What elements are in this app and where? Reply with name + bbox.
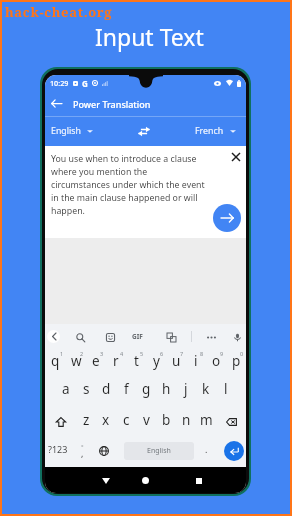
staticText: 8 (200, 350, 204, 357)
staticText: o (212, 352, 221, 370)
button[interactable]: ?123 (45, 436, 71, 465)
button[interactable]: b (156, 407, 176, 436)
staticText: g (142, 380, 151, 398)
staticText: 0 (240, 350, 244, 357)
staticText: You use when to introduce a clause where… (51, 153, 205, 217)
staticText: l (224, 380, 228, 398)
button[interactable]: Voice input (229, 329, 245, 345)
staticText: w (71, 352, 82, 370)
button[interactable]: Enter (224, 441, 244, 461)
button[interactable]: Backspace (216, 407, 246, 436)
staticText: x (102, 411, 110, 429)
button[interactable]: Recent apps (190, 472, 207, 489)
button[interactable]: h (156, 378, 176, 407)
staticText: 7 (180, 350, 184, 357)
staticText: Power Translation (73, 98, 151, 110)
button[interactable]: v (136, 407, 156, 436)
staticText: 3 (100, 350, 104, 357)
staticText: GIF (132, 332, 143, 341)
button[interactable]: Search (72, 329, 88, 345)
button[interactable]: More options (203, 329, 219, 345)
button[interactable]: 1 (45, 349, 66, 378)
button[interactable]: c (116, 407, 136, 436)
staticText: 6 (160, 350, 164, 357)
button[interactable]: j (176, 378, 196, 407)
staticText: . (205, 443, 208, 455)
button[interactable]: 3 (86, 349, 106, 378)
staticText: f (124, 380, 129, 398)
staticText: , (81, 447, 84, 459)
staticText: h (162, 380, 171, 398)
button[interactable]: GIF (129, 329, 146, 344)
staticText: ?123 (48, 443, 68, 455)
staticText: b (162, 411, 171, 429)
staticText: ° (81, 443, 84, 451)
staticText: k (202, 380, 210, 398)
button[interactable]: 0 (226, 349, 246, 378)
button[interactable]: Back (48, 95, 65, 112)
button[interactable]: m (196, 407, 216, 436)
staticText: English (147, 446, 171, 456)
staticText: u (172, 352, 181, 370)
staticText: Input Text (95, 21, 204, 52)
staticText: d (102, 380, 111, 398)
staticText: j (184, 380, 188, 398)
button[interactable]: Translate (213, 204, 241, 232)
button[interactable]: z (76, 407, 96, 436)
button[interactable]: 6 (146, 349, 166, 378)
button[interactable]: . (198, 436, 214, 465)
button[interactable]: ° (73, 436, 91, 465)
staticText: q (51, 352, 60, 370)
staticText: z (83, 411, 90, 429)
button[interactable]: g (136, 378, 156, 407)
button[interactable]: Home (137, 472, 154, 489)
button[interactable]: s (76, 378, 96, 407)
staticText: n (182, 411, 191, 429)
staticText: 9 (220, 350, 224, 357)
staticText: G (82, 78, 88, 89)
staticText: English (51, 125, 81, 137)
button[interactable]: 7 (166, 349, 186, 378)
button[interactable]: Clear text (229, 150, 243, 164)
staticText: v (143, 411, 150, 429)
staticText: a (62, 380, 70, 398)
button[interactable]: Back (97, 472, 114, 489)
button[interactable]: n (176, 407, 196, 436)
staticText: r (113, 352, 119, 370)
staticText: t (134, 352, 139, 370)
button[interactable]: k (196, 378, 216, 407)
button[interactable]: Translate (163, 329, 179, 345)
staticText: c (123, 411, 130, 429)
button[interactable]: 5 (126, 349, 146, 378)
staticText: 1 (60, 350, 64, 357)
button[interactable]: Collapse toolbar (47, 330, 60, 343)
button[interactable]: 4 (106, 349, 126, 378)
staticText: p (232, 352, 241, 370)
staticText: s (83, 380, 90, 398)
button[interactable]: 2 (66, 349, 86, 378)
button[interactable]: English (50, 122, 94, 140)
staticText: 2 (80, 350, 84, 357)
staticText: 4 (120, 350, 124, 357)
button[interactable]: 8 (186, 349, 206, 378)
staticText: e (92, 352, 100, 370)
staticText: m (200, 411, 213, 429)
button[interactable]: a (56, 378, 76, 407)
staticText: i (194, 352, 198, 370)
staticText: French (195, 125, 224, 137)
button[interactable]: English (124, 442, 194, 460)
button[interactable]: French (194, 122, 237, 140)
button[interactable]: x (96, 407, 116, 436)
button[interactable]: 9 (206, 349, 226, 378)
button[interactable]: d (96, 378, 116, 407)
button[interactable]: f (116, 378, 136, 407)
staticText: 5 (140, 350, 144, 357)
staticText: y (153, 352, 160, 370)
button[interactable]: Change language (95, 436, 113, 465)
button[interactable]: Stickers (102, 329, 118, 345)
staticText: hack-cheat.org (5, 3, 113, 21)
staticText: 10:29 (50, 78, 69, 88)
button[interactable]: l (216, 378, 236, 407)
button[interactable]: Swap languages (135, 122, 153, 140)
button[interactable]: Shift (45, 407, 76, 436)
